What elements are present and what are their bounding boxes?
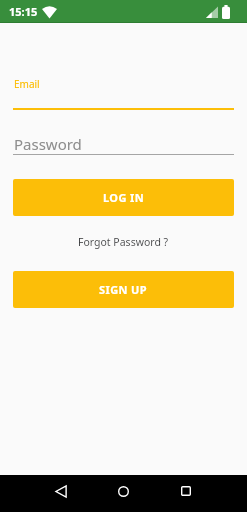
button[interactable]: Forgot Password ? <box>74 231 173 253</box>
button[interactable] <box>167 475 204 507</box>
staticText: Password <box>14 134 82 154</box>
button[interactable] <box>105 475 142 507</box>
staticText: Email <box>14 77 40 91</box>
staticText: 15:15 <box>9 4 38 19</box>
staticText: LOG IN <box>103 190 145 205</box>
button[interactable]: SIGN UP <box>13 271 234 308</box>
staticText: SIGN UP <box>99 282 148 297</box>
button[interactable] <box>43 475 80 507</box>
button[interactable]: LOG IN <box>13 179 234 216</box>
